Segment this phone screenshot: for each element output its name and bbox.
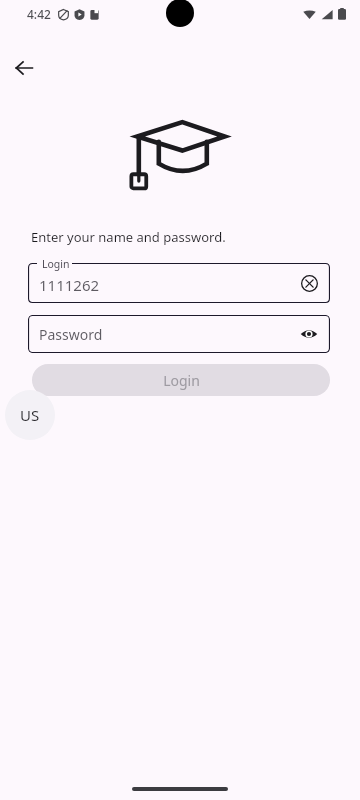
button[interactable]: Login	[32, 364, 330, 396]
staticText: Password	[39, 325, 103, 344]
button[interactable]: 1111262	[28, 263, 330, 303]
staticText: 1111262	[39, 275, 100, 295]
button[interactable]: Clear login	[292, 266, 326, 300]
staticText: Login	[163, 371, 200, 390]
button[interactable]: Show password	[293, 318, 325, 350]
staticText: Enter your name and password.	[31, 228, 226, 246]
staticText: US	[20, 405, 40, 425]
button[interactable]: Password	[28, 315, 330, 353]
button[interactable]: Back	[8, 52, 40, 84]
staticText: 4:42	[27, 6, 51, 22]
button[interactable]: US	[5, 390, 55, 440]
staticText: Login	[42, 257, 70, 271]
